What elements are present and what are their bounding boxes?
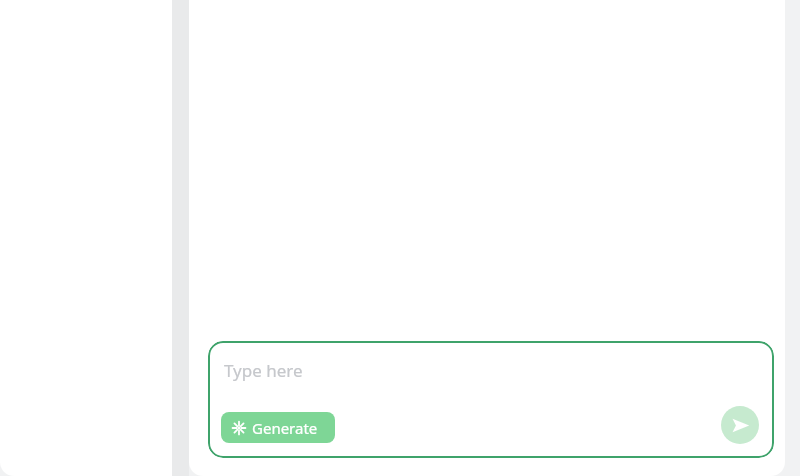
button[interactable]: Send (721, 406, 759, 444)
button[interactable]: Generate (221, 412, 335, 443)
staticText: Generate (252, 418, 318, 438)
button[interactable]: Type here (224, 359, 303, 382)
